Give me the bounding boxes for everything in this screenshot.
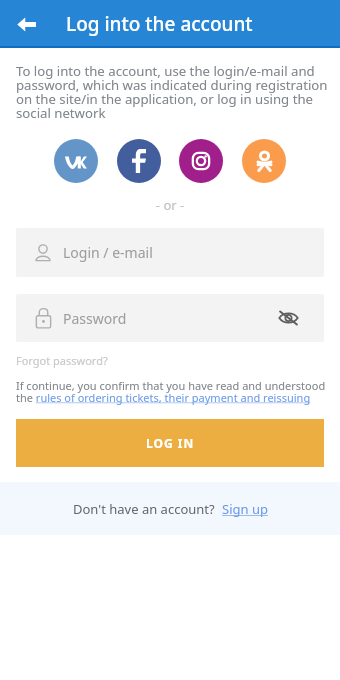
button[interactable]: Password — [16, 294, 324, 342]
button[interactable]: Login / e-mail — [16, 228, 324, 277]
button[interactable]: Log in with Odnoklassniki — [242, 139, 286, 183]
staticText: Don't have an account? — [73, 500, 215, 518]
staticText: Login / e-mail — [63, 243, 153, 262]
staticText: Password — [63, 309, 127, 328]
staticText: To log into the account, use the login/e… — [16, 62, 336, 122]
button[interactable]: Forgot password? — [16, 353, 108, 368]
staticText: Log into the account — [66, 11, 253, 37]
staticText: LOG IN — [146, 435, 195, 451]
button[interactable]: LOG IN — [16, 419, 324, 467]
button[interactable]: Show password — [276, 306, 300, 330]
button[interactable]: Log in with Facebook — [117, 139, 161, 183]
button[interactable]: Back — [13, 11, 39, 37]
staticText: - or - — [0, 196, 340, 214]
button[interactable]: Log in with Instagram — [179, 139, 223, 183]
button[interactable]: Log in with VK — [54, 139, 98, 183]
button[interactable]: Sign up — [222, 500, 268, 518]
button[interactable]: If continue, you confirm that you have r… — [16, 378, 336, 405]
